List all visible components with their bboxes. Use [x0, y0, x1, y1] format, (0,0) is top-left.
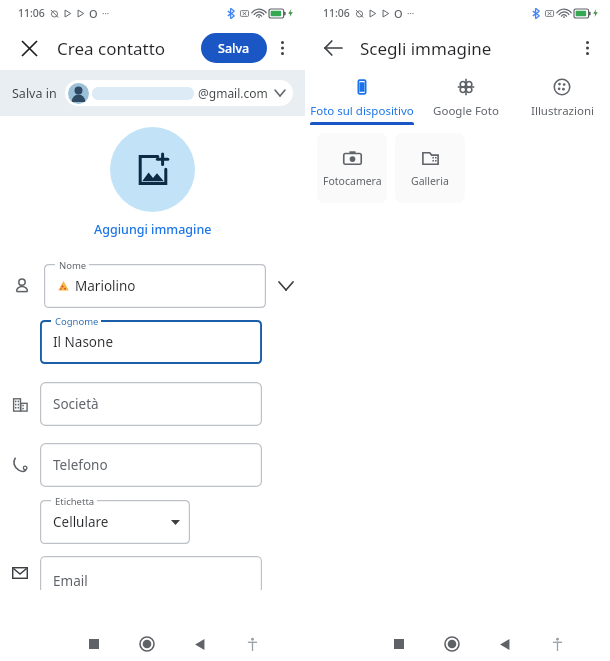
button[interactable]: Accessibility [226, 627, 279, 661]
button[interactable]: Nome [44, 264, 266, 308]
staticText: Il Nasone [53, 333, 113, 351]
staticText: 11:06 [323, 6, 350, 20]
staticText: Etichetta [55, 495, 95, 508]
button[interactable]: Cognome [40, 320, 262, 364]
staticText: Illustrazioni [531, 103, 594, 119]
button[interactable]: More options [267, 33, 297, 63]
staticText: Galleria [411, 174, 449, 188]
button[interactable]: Back [173, 627, 226, 661]
staticText: ··· [407, 7, 415, 19]
button[interactable]: Email [40, 556, 262, 590]
staticText: Salva in [12, 85, 57, 102]
button[interactable]: Aggiungi immagine [0, 127, 305, 238]
staticText: Società [53, 395, 99, 413]
staticText: Crea contatto [57, 37, 166, 60]
staticText: @gmail.com [198, 85, 268, 101]
button[interactable]: @gmail.com [65, 80, 293, 106]
button[interactable]: Fotocamera [317, 133, 387, 203]
button[interactable]: Recent apps [372, 627, 425, 661]
button[interactable]: Foto sul dispositivo [305, 70, 418, 125]
button[interactable]: Back [317, 32, 349, 64]
staticText: Scegli immagine [360, 37, 492, 60]
staticText: Salva [218, 40, 250, 57]
button[interactable]: Google Foto [418, 70, 514, 125]
button[interactable]: Telefono [40, 443, 262, 487]
staticText: Fotocamera [323, 174, 382, 188]
staticText: Cognome [55, 315, 99, 328]
staticText: Aggiungi immagine [94, 221, 212, 238]
button[interactable]: Back [478, 627, 531, 661]
button[interactable]: Home [425, 627, 478, 661]
button[interactable]: Illustrazioni [514, 70, 610, 125]
staticText: O [89, 6, 98, 21]
staticText: Google Foto [433, 103, 499, 119]
staticText: Foto sul dispositivo [310, 103, 414, 119]
button[interactable]: Etichetta [40, 500, 190, 544]
staticText: Nome [59, 259, 87, 272]
staticText: Email [53, 572, 88, 590]
button[interactable]: Close [14, 33, 44, 63]
button[interactable]: Salva [201, 33, 267, 63]
button[interactable]: Accessibility [531, 627, 584, 661]
button[interactable]: Società [40, 382, 262, 426]
staticText: ··· [102, 7, 110, 19]
staticText: O [394, 6, 403, 21]
button[interactable]: Recent apps [67, 627, 120, 661]
button[interactable]: Home [120, 627, 173, 661]
staticText: Cellulare [53, 513, 109, 531]
button[interactable]: More options [572, 33, 602, 63]
staticText: Mariolino [75, 277, 136, 295]
button[interactable]: Expand name fields [266, 260, 305, 312]
button[interactable]: Galleria [395, 133, 465, 203]
staticText: 11:06 [18, 6, 45, 20]
staticText: Telefono [53, 456, 108, 474]
